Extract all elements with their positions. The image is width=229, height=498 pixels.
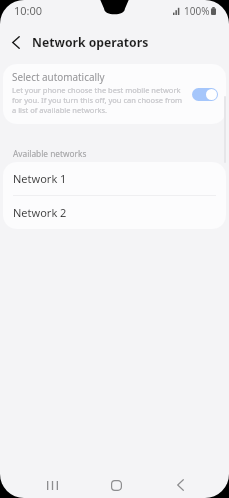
- staticText: Available networks: [13, 148, 87, 159]
- staticText: Network 1: [13, 171, 67, 186]
- button[interactable]: Back: [148, 472, 212, 498]
- staticText: Let your phone choose the best mobile ne…: [12, 85, 187, 115]
- staticText: Select automatically: [12, 70, 105, 83]
- button[interactable]: Network 2: [3, 196, 226, 229]
- button[interactable]: Select automatically: [3, 64, 226, 124]
- staticText: Network 2: [13, 205, 67, 220]
- button[interactable]: Network 1: [3, 162, 226, 195]
- button[interactable]: Home: [84, 472, 148, 498]
- button[interactable]: Navigate up: [0, 28, 32, 57]
- button[interactable]: Recent apps: [21, 472, 84, 498]
- button[interactable]: Select automatically toggle: [192, 88, 218, 101]
- staticText: 100%: [184, 4, 210, 18]
- staticText: 10:00: [14, 3, 43, 18]
- staticText: Network operators: [32, 34, 149, 51]
